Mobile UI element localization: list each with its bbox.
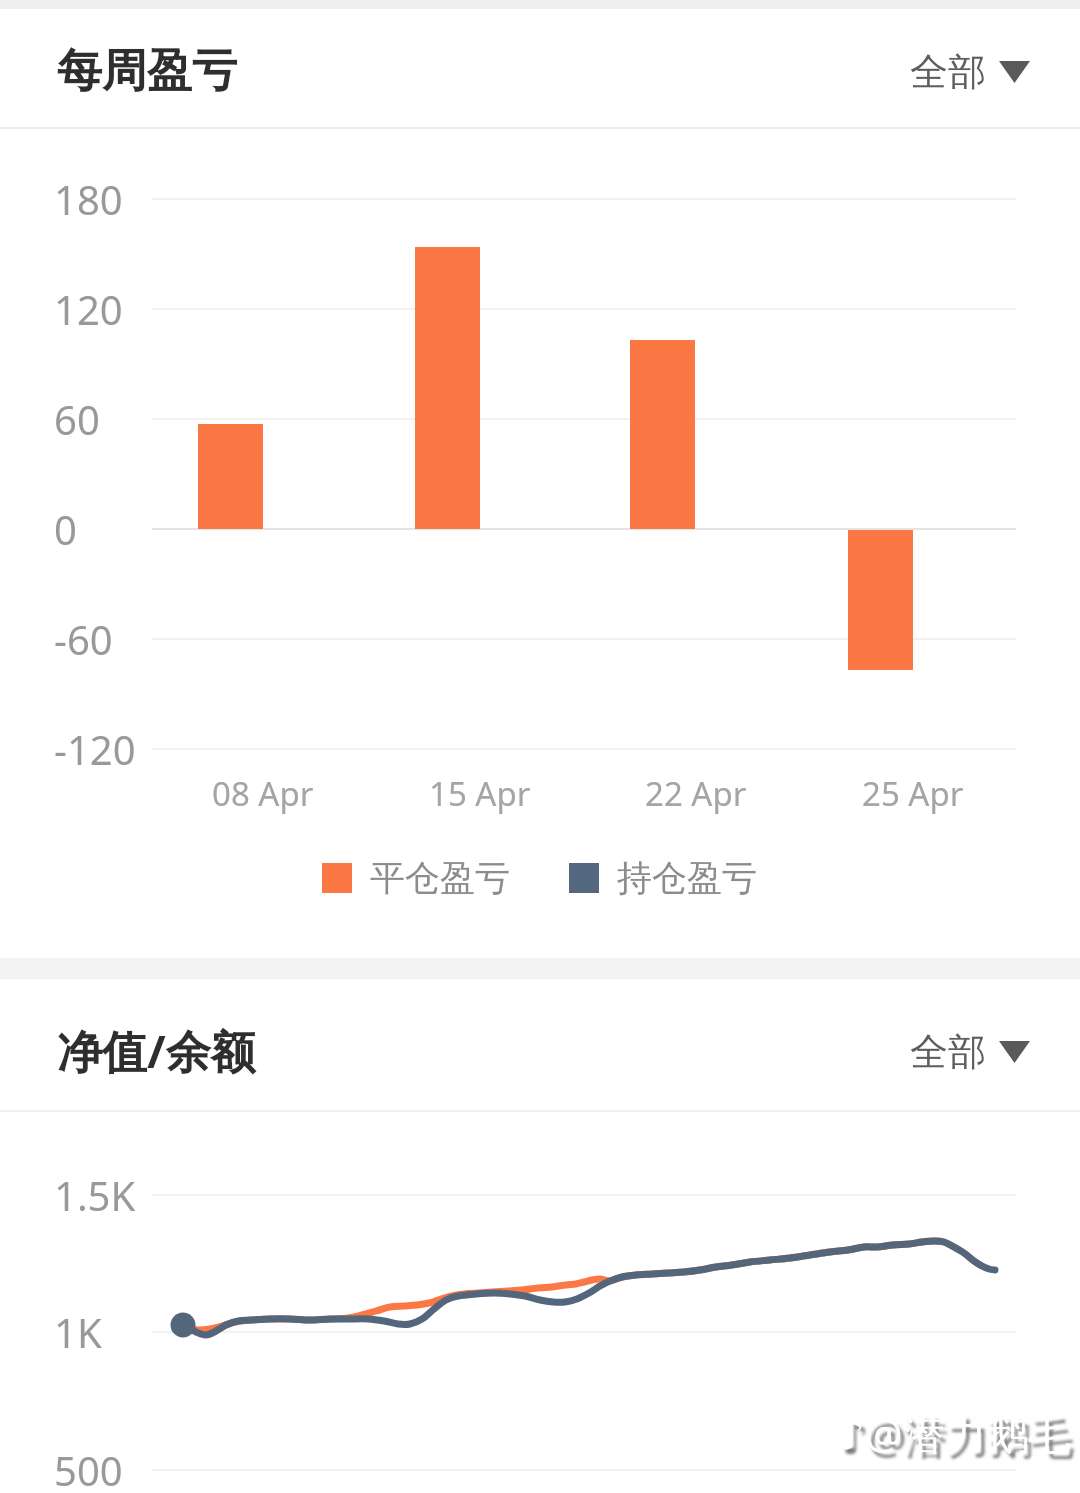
staticText: 净值/余额 (57, 1020, 256, 1081)
button[interactable]: 全部 (893, 37, 1043, 107)
staticText: 500 (54, 1443, 123, 1493)
staticText: 22 Apr (645, 771, 747, 816)
staticText: 180 (54, 172, 123, 226)
staticText: 每周盈亏 (57, 43, 237, 100)
staticText: 25 Apr (862, 771, 964, 816)
staticText: 08 Apr (212, 771, 314, 816)
staticText: 全部 (910, 1028, 986, 1076)
staticText: ♪@潜力鹅毛 (838, 1404, 1071, 1461)
staticText: -120 (54, 722, 136, 776)
staticText: 120 (54, 282, 123, 336)
staticText: -60 (54, 612, 113, 666)
staticText: 0 (54, 502, 77, 556)
button[interactable]: 全部 (893, 1017, 1043, 1087)
staticText: 1K (54, 1305, 102, 1359)
staticText: 1.5K (54, 1168, 136, 1222)
staticText: 平仓盈亏 (370, 856, 510, 900)
staticText: 60 (54, 392, 100, 446)
staticText: 持仓盈亏 (617, 856, 757, 900)
staticText: 全部 (910, 48, 986, 96)
staticText: 15 Apr (429, 771, 531, 816)
